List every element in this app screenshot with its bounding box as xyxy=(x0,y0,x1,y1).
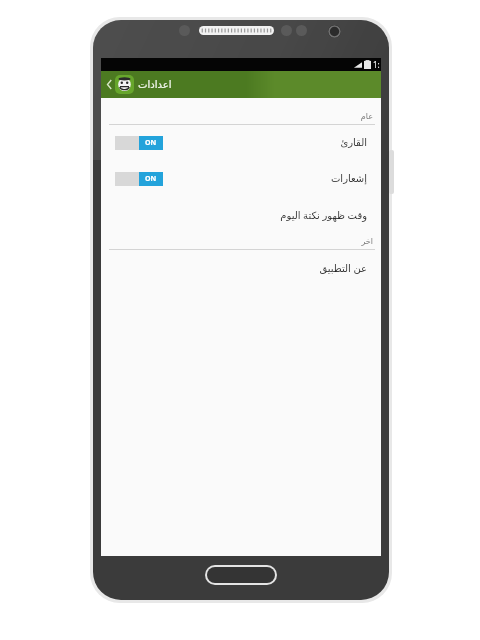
staticText: ON xyxy=(145,174,157,184)
button[interactable]: Toggle on xyxy=(115,172,163,186)
button[interactable]: Home xyxy=(205,565,277,585)
button[interactable]: Toggle on xyxy=(101,125,381,161)
button[interactable]: Toggle on xyxy=(101,161,381,197)
button[interactable]: وقت ظهور نكتة اليوم xyxy=(101,197,381,233)
button[interactable]: عن التطبيق xyxy=(101,250,381,286)
staticText: اخر xyxy=(361,237,373,246)
staticText: ON xyxy=(145,138,157,148)
staticText: 1: xyxy=(373,59,380,70)
staticText: وقت ظهور نكتة اليوم xyxy=(280,208,367,222)
staticText: عن التطبيق xyxy=(319,261,367,275)
button[interactable]: Back xyxy=(104,71,114,98)
staticText: إشعارات xyxy=(330,173,367,185)
staticText: اعدادات xyxy=(138,79,172,91)
staticText: القارئ xyxy=(340,137,367,149)
button[interactable]: Toggle on xyxy=(115,136,163,150)
staticText: عام xyxy=(360,112,373,121)
